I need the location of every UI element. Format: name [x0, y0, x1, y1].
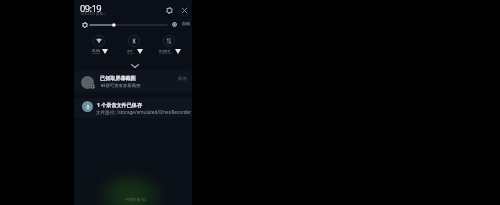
staticText: 已抓取屏幕截图	[100, 75, 136, 81]
button[interactable]: Settings	[163, 4, 175, 16]
staticText: 1 个录音文件已保存	[97, 102, 142, 109]
staticText: 09:19	[80, 2, 102, 15]
staticText: 自动	[182, 21, 190, 26]
button[interactable]	[160, 34, 178, 55]
staticText: 蓝牙	[127, 49, 133, 53]
staticText: 中国联通 5G	[125, 197, 147, 202]
button[interactable]: Auto brightness	[170, 20, 179, 29]
button[interactable]: Close	[178, 4, 190, 16]
button[interactable]	[90, 34, 108, 55]
staticText: 截图	[178, 76, 187, 82]
button[interactable]: Expand notifications	[128, 60, 142, 72]
button[interactable]: 已抓取屏幕截图	[74, 71, 192, 92]
button[interactable]	[125, 34, 143, 55]
staticText: 文件路径: /storage/emulated/0/neoRecorder	[96, 109, 192, 115]
staticText: WLAN	[92, 49, 100, 53]
staticText: 12月29日 星期二	[80, 11, 107, 16]
staticText: 移动数据	[159, 49, 171, 53]
staticText: 触摸可查看屏幕截图	[101, 83, 141, 89]
button[interactable]: 1 个录音文件已保存	[74, 98, 192, 118]
